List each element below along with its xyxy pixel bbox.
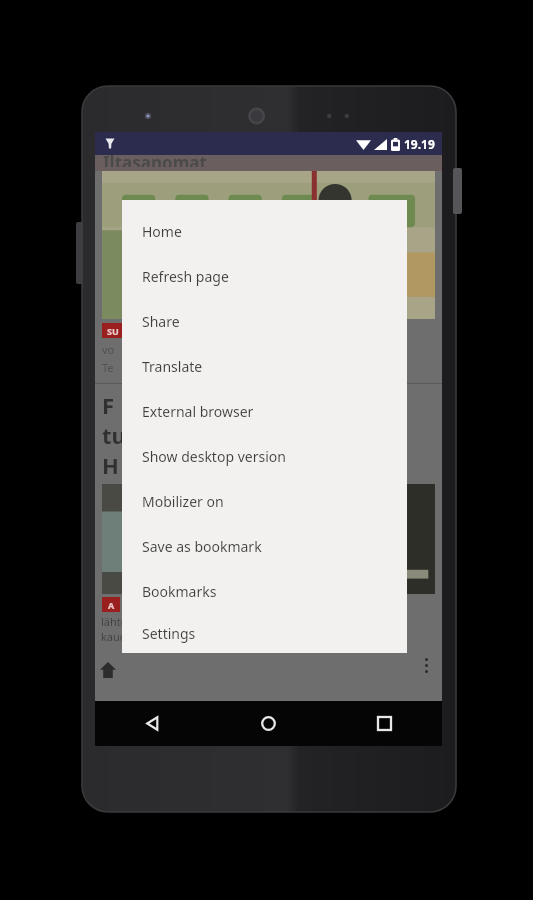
- staticText: A: [108, 599, 115, 611]
- button[interactable]: Recent apps: [326, 701, 442, 746]
- staticText: Settings: [142, 624, 196, 643]
- staticText: Refresh page: [142, 267, 229, 286]
- staticText: vo: [102, 342, 115, 357]
- button[interactable]: Refresh page: [122, 254, 407, 299]
- staticText: F: [102, 390, 115, 420]
- staticText: tu: [102, 420, 126, 450]
- button[interactable]: More options: [416, 654, 436, 676]
- staticText: Bookmarks: [142, 582, 217, 601]
- button[interactable]: Settings: [122, 614, 407, 653]
- button[interactable]: Mobilizer on: [122, 479, 407, 524]
- staticText: Show desktop version: [142, 447, 286, 466]
- staticText: External browser: [142, 402, 254, 421]
- staticText: Share: [142, 312, 180, 331]
- staticText: Save as bookmark: [142, 537, 262, 556]
- button[interactable]: Share: [122, 299, 407, 344]
- staticText: H: [102, 450, 119, 480]
- button[interactable]: Show desktop version: [122, 434, 407, 479]
- staticText: Mobilizer on: [142, 492, 224, 511]
- staticText: Home: [142, 222, 182, 241]
- button[interactable]: Home: [122, 209, 407, 254]
- staticText: lähtee paalupaikalta huomenna ajettavaan…: [101, 614, 341, 644]
- button[interactable]: Save as bookmark: [122, 524, 407, 569]
- button[interactable]: Back: [95, 701, 210, 746]
- staticText: SU: [107, 325, 119, 337]
- button[interactable]: Bookmarks: [122, 569, 407, 614]
- staticText: Te: [102, 360, 114, 375]
- button[interactable]: Translate: [122, 344, 407, 389]
- button[interactable]: Home: [210, 701, 326, 746]
- staticText: 19.19: [404, 136, 435, 152]
- staticText: Iltasanomat: [103, 151, 207, 167]
- other: Home: [100, 662, 116, 678]
- button[interactable]: External browser: [122, 389, 407, 434]
- staticText: Translate: [142, 357, 203, 376]
